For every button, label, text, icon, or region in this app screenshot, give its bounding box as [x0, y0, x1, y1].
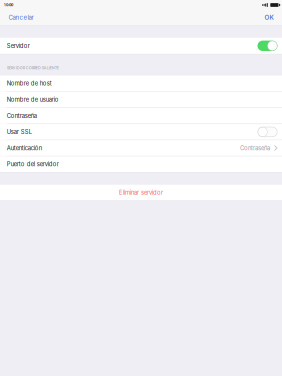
staticText: Nombre de host [7, 80, 52, 87]
button[interactable]: Cancelar [0, 10, 41, 25]
staticText: Servidor [7, 42, 30, 49]
staticText: SERVIDOR CORREO SALIENTE [7, 65, 59, 70]
button[interactable]: Contraseña [0, 108, 282, 124]
button[interactable]: Servidor [0, 38, 282, 54]
button[interactable]: Usar SSL [0, 124, 282, 140]
button[interactable]: Nombre de host [0, 76, 282, 91]
staticText: Contraseña [240, 144, 270, 152]
staticText: Puerto del servidor [7, 161, 59, 168]
button[interactable]: Nombre de usuario [0, 92, 282, 107]
staticText: 10:00 [4, 3, 13, 7]
staticText: Nombre de usuario [7, 96, 59, 103]
staticText: Cancelar [8, 14, 33, 21]
staticText: Contraseña [7, 112, 37, 119]
button[interactable]: OK [256, 10, 282, 25]
staticText: Autenticación [7, 144, 42, 152]
button[interactable]: Puerto del servidor [0, 156, 282, 172]
button[interactable]: Eliminar servidor [0, 185, 282, 200]
staticText: Eliminar servidor [119, 189, 163, 196]
staticText: OK [264, 14, 273, 21]
staticText: Usar SSL [7, 128, 32, 135]
button[interactable]: Autenticación [0, 140, 282, 156]
